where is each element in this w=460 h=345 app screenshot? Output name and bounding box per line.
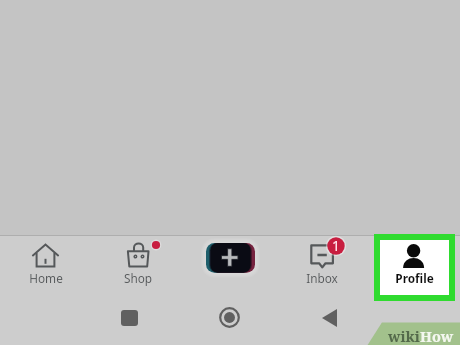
staticText: Inbox [282, 270, 362, 286]
button[interactable]: Home [6, 238, 86, 288]
button[interactable]: Recents [121, 310, 138, 326]
staticText: Home [6, 270, 86, 286]
staticText: 1 [324, 236, 348, 255]
staticText: wiki [388, 326, 420, 345]
button[interactable]: Home [219, 307, 240, 328]
button[interactable]: Profile [380, 240, 449, 295]
staticText: How [420, 326, 454, 345]
button[interactable]: Shop [98, 238, 178, 288]
staticText: Profile [380, 270, 449, 286]
staticText: Shop [98, 270, 178, 286]
button[interactable]: Create [202, 239, 259, 277]
button[interactable]: Back [322, 309, 337, 327]
button[interactable]: Inbox [282, 238, 362, 288]
